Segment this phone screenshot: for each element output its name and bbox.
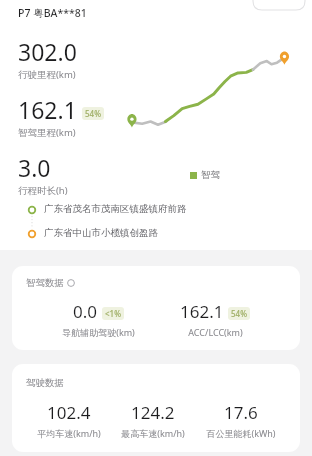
staticText: 最高车速(km/h) — [121, 427, 185, 439]
staticText: 54% — [85, 108, 101, 119]
staticText: 3.0 — [18, 152, 51, 183]
staticText: 102.4 — [47, 401, 91, 424]
staticText: 162.1 — [18, 94, 77, 125]
staticText: 162.1 — [180, 300, 224, 323]
staticText: 百公里能耗(kWh) — [206, 427, 276, 439]
staticText: 行程时长(h) — [18, 184, 68, 197]
staticText: 17.6 — [224, 401, 258, 424]
button[interactable]: 广东省茂名市茂南区镇盛镇府前路 — [44, 203, 187, 215]
button[interactable]: 驾驶数据 — [12, 364, 300, 452]
staticText: P7 粤BA***81 — [18, 6, 87, 20]
staticText: 平均车速(km/h) — [37, 427, 101, 439]
button[interactable]: 智驾数据说明 — [12, 266, 300, 350]
staticText: 智驾 — [201, 169, 220, 181]
staticText: 广东省中山市小榄镇创盈路 — [44, 227, 158, 239]
staticText: 驾驶数据 — [26, 377, 64, 389]
staticText: 54% — [231, 308, 247, 319]
staticText: 智驾数据 — [26, 277, 64, 289]
staticText: 124.2 — [131, 401, 175, 424]
staticText: 行驶里程(km) — [18, 68, 76, 81]
staticText: 广东省茂名市茂南区镇盛镇府前路 — [44, 203, 187, 215]
staticText: 0.0 — [73, 300, 98, 323]
button[interactable]: 广东省中山市小榄镇创盈路 — [44, 227, 158, 239]
staticText: 智驾里程(km) — [18, 126, 76, 139]
staticText: 302.0 — [18, 36, 77, 67]
staticText: <1% — [105, 308, 121, 319]
staticText: ACC/LCC(km) — [188, 326, 243, 338]
staticText: 导航辅助驾驶(km) — [62, 326, 135, 338]
button[interactable]: 智驾数据说明 — [26, 277, 75, 289]
